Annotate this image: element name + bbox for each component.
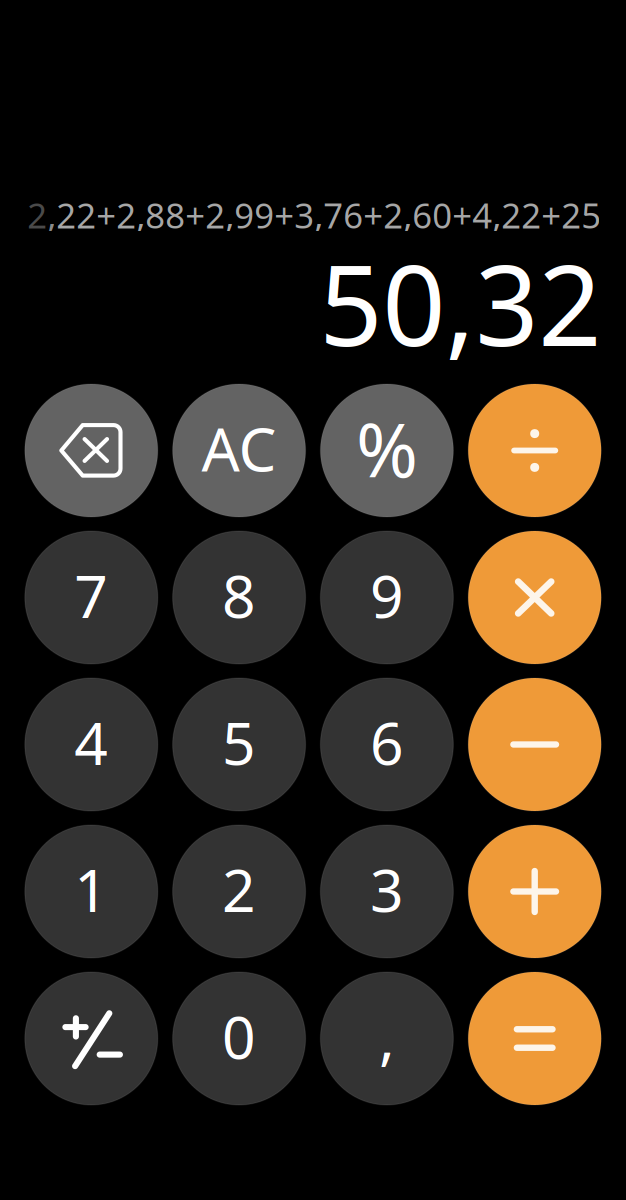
button[interactable]: 6 — [320, 678, 453, 811]
button[interactable]: 1 — [25, 825, 158, 958]
button[interactable]: Minus — [468, 678, 601, 811]
staticText: AC — [202, 408, 277, 488]
button[interactable]: 4 — [25, 678, 158, 811]
staticText: 2 — [222, 850, 256, 928]
button[interactable]: Equals — [468, 972, 601, 1105]
button[interactable]: 5 — [173, 678, 306, 811]
staticText: 8 — [222, 556, 256, 634]
button[interactable]: 2 — [173, 825, 306, 958]
staticText: , — [47, 192, 56, 238]
button[interactable]: Multiply — [468, 531, 601, 664]
button[interactable]: Plus or minus — [25, 972, 158, 1105]
staticText: 5 — [222, 703, 256, 781]
staticText: 22+2,88+2,99+3,76+2,60+4,22+25 — [56, 192, 601, 238]
button[interactable]: 7 — [25, 531, 158, 664]
button[interactable]: 0 — [173, 972, 306, 1105]
staticText: 1 — [74, 850, 108, 928]
button[interactable]: Plus — [468, 825, 601, 958]
button[interactable]: AC — [173, 384, 306, 517]
staticText: 50,32 — [319, 229, 601, 376]
button[interactable]: Divide — [468, 384, 601, 517]
button[interactable]: 3 — [320, 825, 453, 958]
staticText: 7 — [74, 556, 108, 634]
button[interactable]: , — [320, 972, 453, 1105]
button[interactable]: 9 — [320, 531, 453, 664]
button[interactable]: 8 — [173, 531, 306, 664]
staticText: 6 — [370, 703, 404, 781]
button[interactable]: % — [320, 384, 453, 517]
staticText: 0 — [222, 997, 256, 1075]
staticText: 4 — [74, 703, 108, 781]
staticText: , — [379, 997, 395, 1075]
button[interactable]: Backspace — [25, 384, 158, 517]
staticText: % — [356, 399, 418, 498]
staticText: 3 — [370, 850, 404, 928]
staticText: 2 — [27, 192, 47, 238]
staticText: 9 — [370, 556, 404, 634]
